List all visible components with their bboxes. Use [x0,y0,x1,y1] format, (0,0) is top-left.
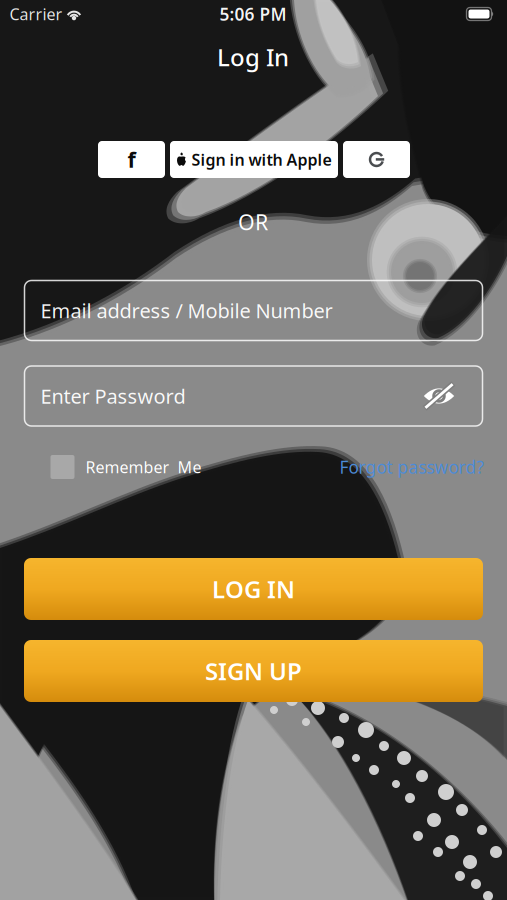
staticText: OR [238,208,268,236]
button[interactable]: Sign in with Apple [170,141,338,178]
staticText: Forgot password? [339,455,484,478]
button[interactable]: Sign in with Google [343,141,410,178]
staticText: SIGN UP [205,655,302,687]
staticText: Email address / Mobile Number [40,297,332,324]
staticText: f [127,145,135,174]
button[interactable]: Sign in with Facebook [98,141,165,178]
staticText: Carrier [9,3,62,25]
staticText: Log In [217,41,289,73]
button[interactable]: SIGN UP [24,640,483,702]
button[interactable]: LOG IN [24,558,483,620]
staticText: 5:06 PM [219,2,286,25]
staticText: LOG IN [212,573,295,605]
button[interactable]: Remember Me [50,455,201,479]
button[interactable]: Forgot password? [339,455,484,478]
staticText: Remember Me [85,456,201,478]
staticText: Enter Password [40,383,185,409]
staticText: Sign in with Apple [191,149,331,170]
button[interactable]: Show password [416,374,462,418]
